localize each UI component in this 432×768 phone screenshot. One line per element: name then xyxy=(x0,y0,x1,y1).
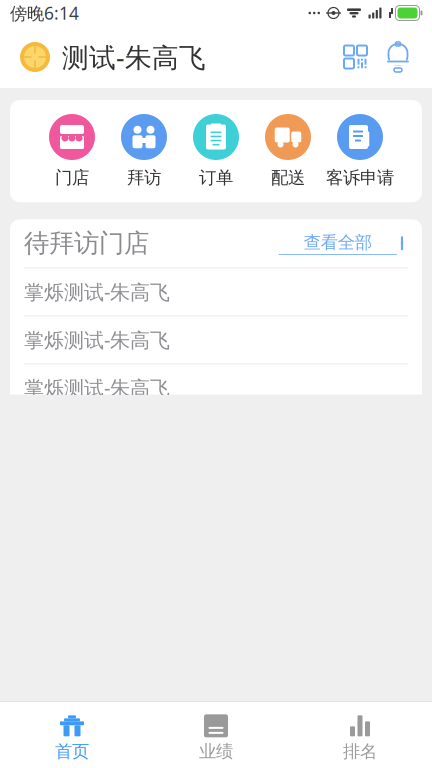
button[interactable]: 业绩 xyxy=(144,702,288,768)
button[interactable]: 客诉申请 xyxy=(324,114,396,188)
button[interactable]: 掌烁测试-朱高飞 xyxy=(10,364,422,411)
staticText: 掌烁测试-朱高飞 xyxy=(24,278,170,305)
button[interactable]: 扫一扫 xyxy=(335,36,376,77)
button[interactable]: 拜访 xyxy=(108,114,180,188)
button[interactable]: 掌烁测试-朱高飞 xyxy=(10,268,422,315)
staticText: 掌烁测试-朱高飞 xyxy=(24,326,170,353)
staticText: 业绩 xyxy=(199,741,233,762)
button[interactable]: 首页 xyxy=(0,702,144,768)
button[interactable]: 掌烁测试-朱高飞 xyxy=(10,316,422,363)
staticText: 排名 xyxy=(343,741,377,762)
button[interactable]: 配送 xyxy=(252,114,324,188)
staticText: 客诉申请 xyxy=(326,167,394,188)
staticText: 拜访 xyxy=(127,167,161,188)
staticText: 门店 xyxy=(55,167,89,188)
staticText: 掌烁测试-朱高飞 xyxy=(24,374,170,401)
staticText: 傍晚6:14 xyxy=(10,1,79,24)
staticText: 查看全部 xyxy=(304,232,372,253)
staticText: 首页 xyxy=(55,741,89,762)
button[interactable]: 门店 xyxy=(36,114,108,188)
staticText: 订单 xyxy=(199,167,233,188)
staticText: 测试-朱高飞 xyxy=(62,39,206,75)
button[interactable]: 订单 xyxy=(180,114,252,188)
staticText: 待拜访门店 xyxy=(24,228,149,259)
button[interactable]: 排名 xyxy=(288,702,432,768)
button[interactable]: 通知 xyxy=(376,37,420,77)
staticText: 配送 xyxy=(271,167,305,188)
button[interactable]: 查看全部 xyxy=(278,228,408,259)
